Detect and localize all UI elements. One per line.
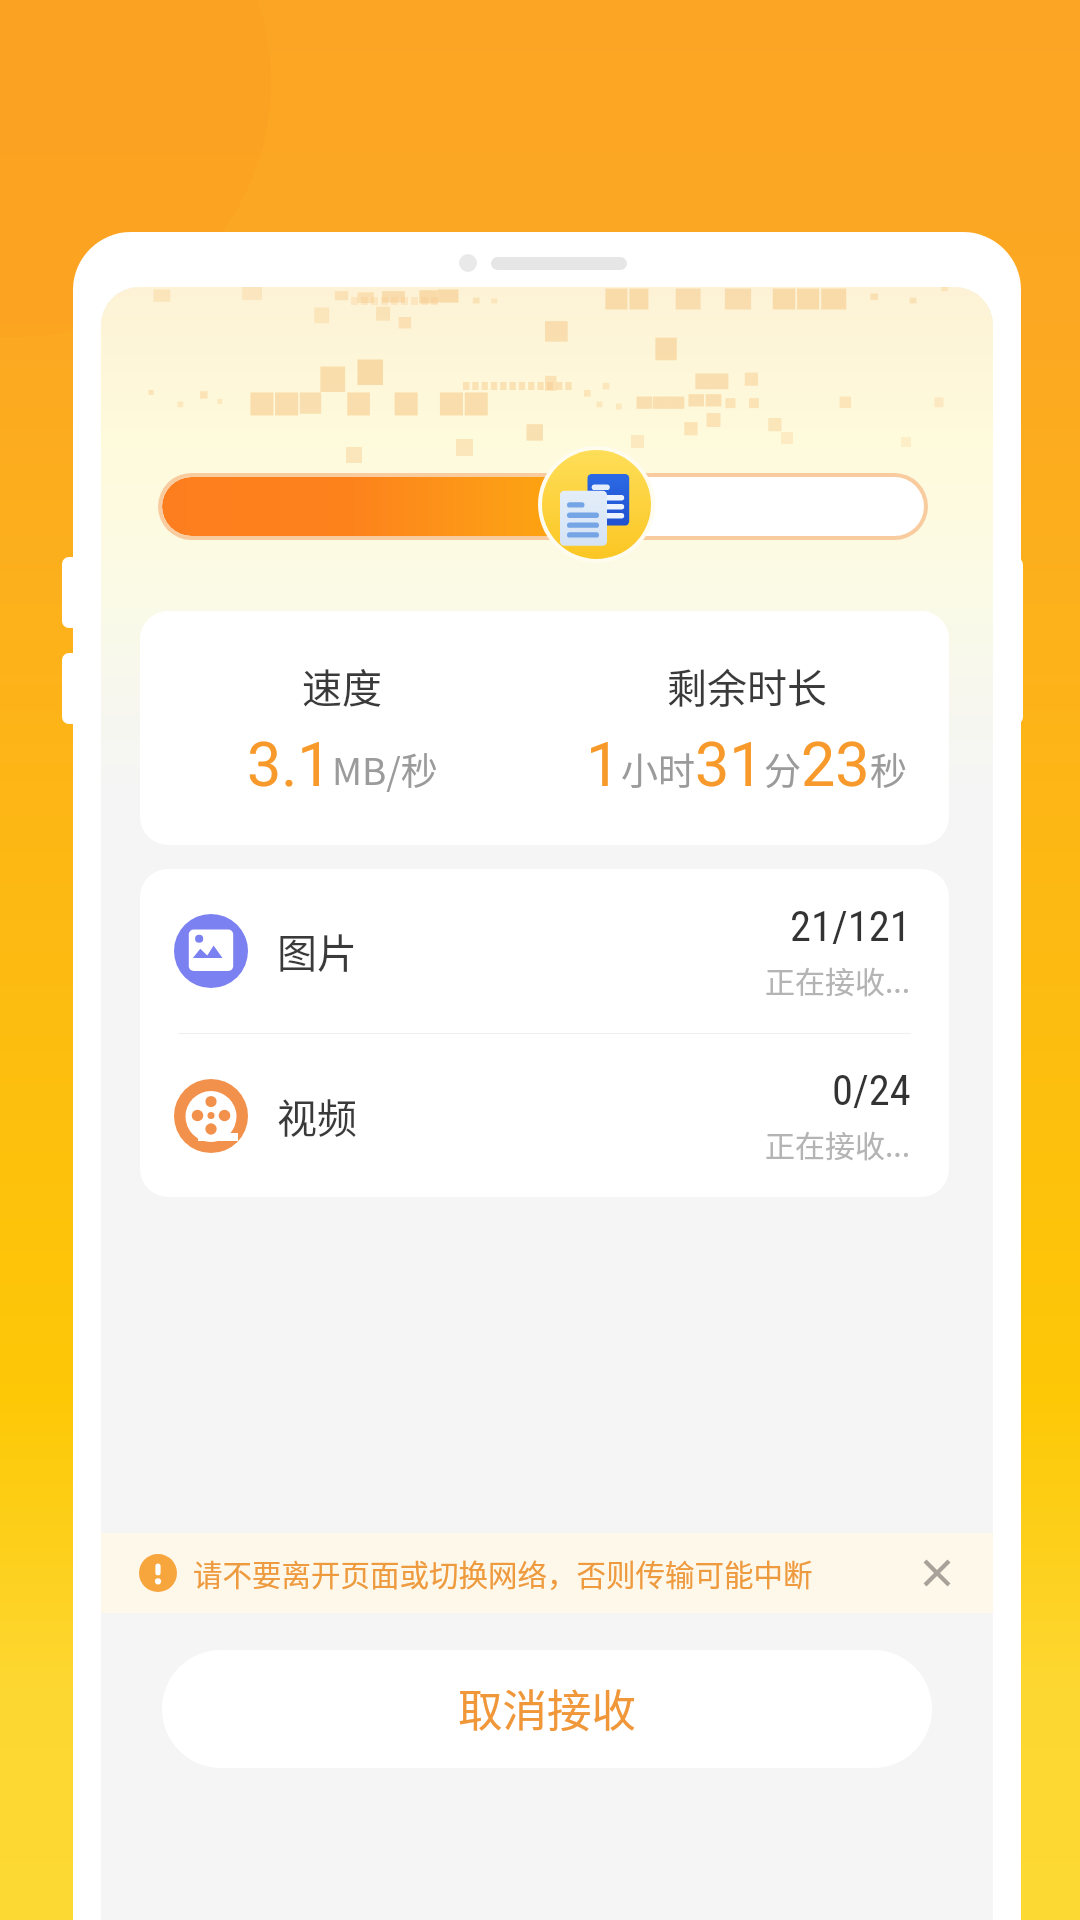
staticText: 3.1 <box>247 729 332 800</box>
button[interactable]: 视频 <box>140 1034 949 1197</box>
staticText: 小时 <box>621 742 695 796</box>
staticText: 取消接收 <box>458 1675 637 1739</box>
staticText: 请不要离开页面或切换网络，否则传输可能中断 <box>193 1552 813 1595</box>
staticText: 秒 <box>870 742 907 796</box>
staticText: 视频 <box>277 1087 357 1145</box>
staticText: 31 <box>695 729 764 800</box>
button[interactable]: 关闭提示 <box>909 1545 965 1601</box>
staticText: 分 <box>764 742 801 796</box>
staticText: 图片 <box>277 922 357 980</box>
button[interactable]: 图片 <box>140 869 949 1033</box>
staticText: 剩余时长 <box>667 657 827 715</box>
staticText: 21/121 <box>790 902 911 952</box>
staticText: 0/24 <box>832 1066 911 1116</box>
staticText: 正在接收... <box>765 1122 911 1165</box>
staticText: 正在接收... <box>765 958 911 1001</box>
staticText: 23 <box>801 729 870 800</box>
button[interactable]: 取消接收 <box>162 1650 932 1768</box>
staticText: 1 <box>586 729 621 800</box>
staticText: MB/秒 <box>332 742 438 796</box>
staticText: 速度 <box>302 657 382 715</box>
